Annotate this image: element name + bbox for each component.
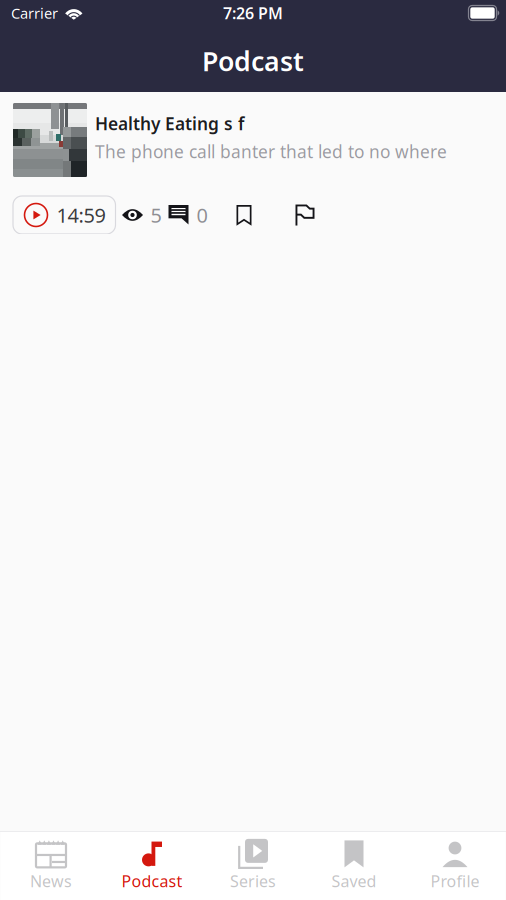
button[interactable]: News — [0, 835, 101, 897]
button[interactable]: Saved — [303, 835, 404, 897]
button[interactable]: Save — [217, 196, 270, 234]
button[interactable]: Views — [115, 196, 168, 234]
staticText: Podcast — [202, 43, 304, 79]
staticText: Profile — [430, 870, 479, 892]
button[interactable]: 14:59 — [13, 196, 115, 234]
button[interactable]: Report — [270, 196, 339, 234]
staticText: 0 — [196, 202, 207, 228]
staticText: Series — [230, 870, 276, 892]
staticText: News — [30, 870, 72, 892]
staticText: Carrier — [11, 3, 58, 23]
button[interactable]: Podcast — [101, 835, 202, 897]
staticText: The phone call banter that led to no whe… — [95, 140, 447, 163]
staticText: Healthy Eating s f — [95, 112, 244, 135]
staticText: 5 — [150, 202, 161, 228]
button[interactable]: Series — [202, 835, 303, 897]
button[interactable]: Profile — [404, 835, 505, 897]
staticText: Podcast — [121, 870, 182, 892]
staticText: 7:26 PM — [223, 2, 283, 24]
button[interactable]: Comments — [168, 196, 217, 234]
staticText: 14:59 — [56, 202, 105, 228]
staticText: Saved — [331, 870, 376, 892]
